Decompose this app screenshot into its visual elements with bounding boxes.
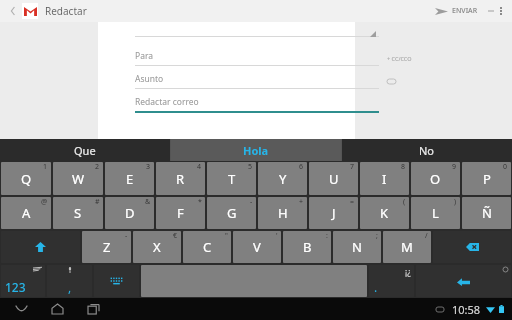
button[interactable]: X xyxy=(133,231,181,263)
button[interactable]: Backspace xyxy=(433,231,511,263)
staticText: & xyxy=(145,197,151,207)
button[interactable]: + CC/CCO xyxy=(387,55,412,62)
staticText: 1 xyxy=(43,162,48,172)
staticText: M xyxy=(401,238,413,256)
button[interactable]: Redactar correo xyxy=(135,96,379,113)
staticText: ) xyxy=(454,197,457,207)
button[interactable]: Change keyboard xyxy=(94,265,139,297)
staticText: A xyxy=(22,204,31,222)
staticText: Para xyxy=(135,50,154,62)
button[interactable]: H xyxy=(258,197,307,229)
button[interactable]: A xyxy=(1,197,51,229)
staticText: 123 xyxy=(5,279,26,295)
staticText: 10:58 xyxy=(452,302,481,317)
staticText: H xyxy=(278,204,288,222)
button[interactable]: E xyxy=(105,162,154,195)
button[interactable]: T xyxy=(207,162,256,195)
staticText: ENVIAR xyxy=(452,6,478,16)
button[interactable]: J xyxy=(309,197,358,229)
button[interactable]: Recent apps xyxy=(82,298,104,320)
button[interactable]: M xyxy=(383,231,431,263)
button[interactable]: W xyxy=(53,162,103,195)
staticText: € xyxy=(173,231,178,241)
button[interactable]: N xyxy=(333,231,381,263)
staticText: 3 xyxy=(146,162,151,172)
button[interactable]: Para xyxy=(135,50,379,66)
button[interactable]: Y xyxy=(258,162,307,195)
button[interactable]: C xyxy=(183,231,231,263)
staticText: 0 xyxy=(503,162,508,172)
button[interactable]: Z xyxy=(82,231,131,263)
staticText: Redactar correo xyxy=(135,96,199,108)
button[interactable]: Ñ xyxy=(462,197,511,229)
staticText: S xyxy=(74,204,82,222)
staticText: - xyxy=(125,231,128,241)
staticText: 7 xyxy=(350,162,355,172)
button[interactable]: Asunto xyxy=(135,73,379,89)
staticText: # xyxy=(95,197,100,207)
staticText: U xyxy=(329,170,339,188)
button[interactable]: S xyxy=(53,197,103,229)
button[interactable]: . xyxy=(369,265,414,297)
staticText: W xyxy=(72,170,85,188)
staticText: L xyxy=(432,204,439,222)
staticText: / xyxy=(425,231,428,241)
button[interactable]: No xyxy=(342,139,512,161)
button[interactable]: F xyxy=(156,197,205,229)
button[interactable]: Back xyxy=(10,298,32,320)
button[interactable]: D xyxy=(105,197,154,229)
staticText: N xyxy=(352,238,362,256)
button[interactable]: K xyxy=(360,197,409,229)
staticText: " xyxy=(225,231,228,241)
staticText: 5 xyxy=(248,162,253,172)
staticText: P xyxy=(483,170,491,188)
staticText: 2 xyxy=(95,162,100,172)
staticText: ( xyxy=(403,197,406,207)
staticText: ¡¿ xyxy=(405,266,411,277)
button[interactable]: Home xyxy=(46,298,68,320)
staticText: @ xyxy=(41,197,48,207)
staticText: R xyxy=(176,170,185,188)
button[interactable]: U xyxy=(309,162,358,195)
button[interactable]: B xyxy=(283,231,331,263)
staticText: V xyxy=(253,238,261,256)
button[interactable]: Q xyxy=(1,162,51,195)
button[interactable]: 123 xyxy=(1,265,45,297)
button[interactable]: Enter xyxy=(416,265,511,297)
button[interactable]: R xyxy=(156,162,205,195)
button[interactable]: V xyxy=(233,231,281,263)
staticText: X xyxy=(153,238,161,256)
staticText: D xyxy=(125,204,135,222)
staticText: J xyxy=(332,204,336,222)
button[interactable]: ENVIAR xyxy=(431,6,482,16)
staticText: Redactar xyxy=(45,4,87,18)
button[interactable]: More options xyxy=(494,2,508,20)
button[interactable]: Attach file xyxy=(385,75,397,87)
staticText: Z xyxy=(103,238,111,256)
staticText: - xyxy=(250,197,253,207)
staticText: = xyxy=(350,197,355,207)
staticText: K xyxy=(380,204,389,222)
staticText: C xyxy=(203,238,212,256)
button[interactable]: G xyxy=(207,197,256,229)
button[interactable]: , xyxy=(47,265,92,297)
staticText: I xyxy=(382,170,387,188)
staticText: Asunto xyxy=(135,73,164,85)
button[interactable]: Hola xyxy=(171,139,341,161)
staticText: 9 xyxy=(452,162,457,172)
button[interactable]: O xyxy=(411,162,460,195)
staticText: ; xyxy=(376,231,378,241)
staticText: F xyxy=(177,204,184,222)
staticText: E xyxy=(126,170,134,188)
button[interactable]: Que xyxy=(0,139,170,161)
button[interactable]: P xyxy=(462,162,511,195)
staticText: O xyxy=(430,170,441,188)
staticText: * xyxy=(198,197,202,207)
button[interactable]: I xyxy=(360,162,409,195)
staticText: Hola xyxy=(243,143,269,158)
staticText: No xyxy=(419,143,435,158)
button[interactable]: L xyxy=(411,197,460,229)
button[interactable]: Shift xyxy=(1,231,80,263)
button[interactable]: Up xyxy=(4,2,22,20)
